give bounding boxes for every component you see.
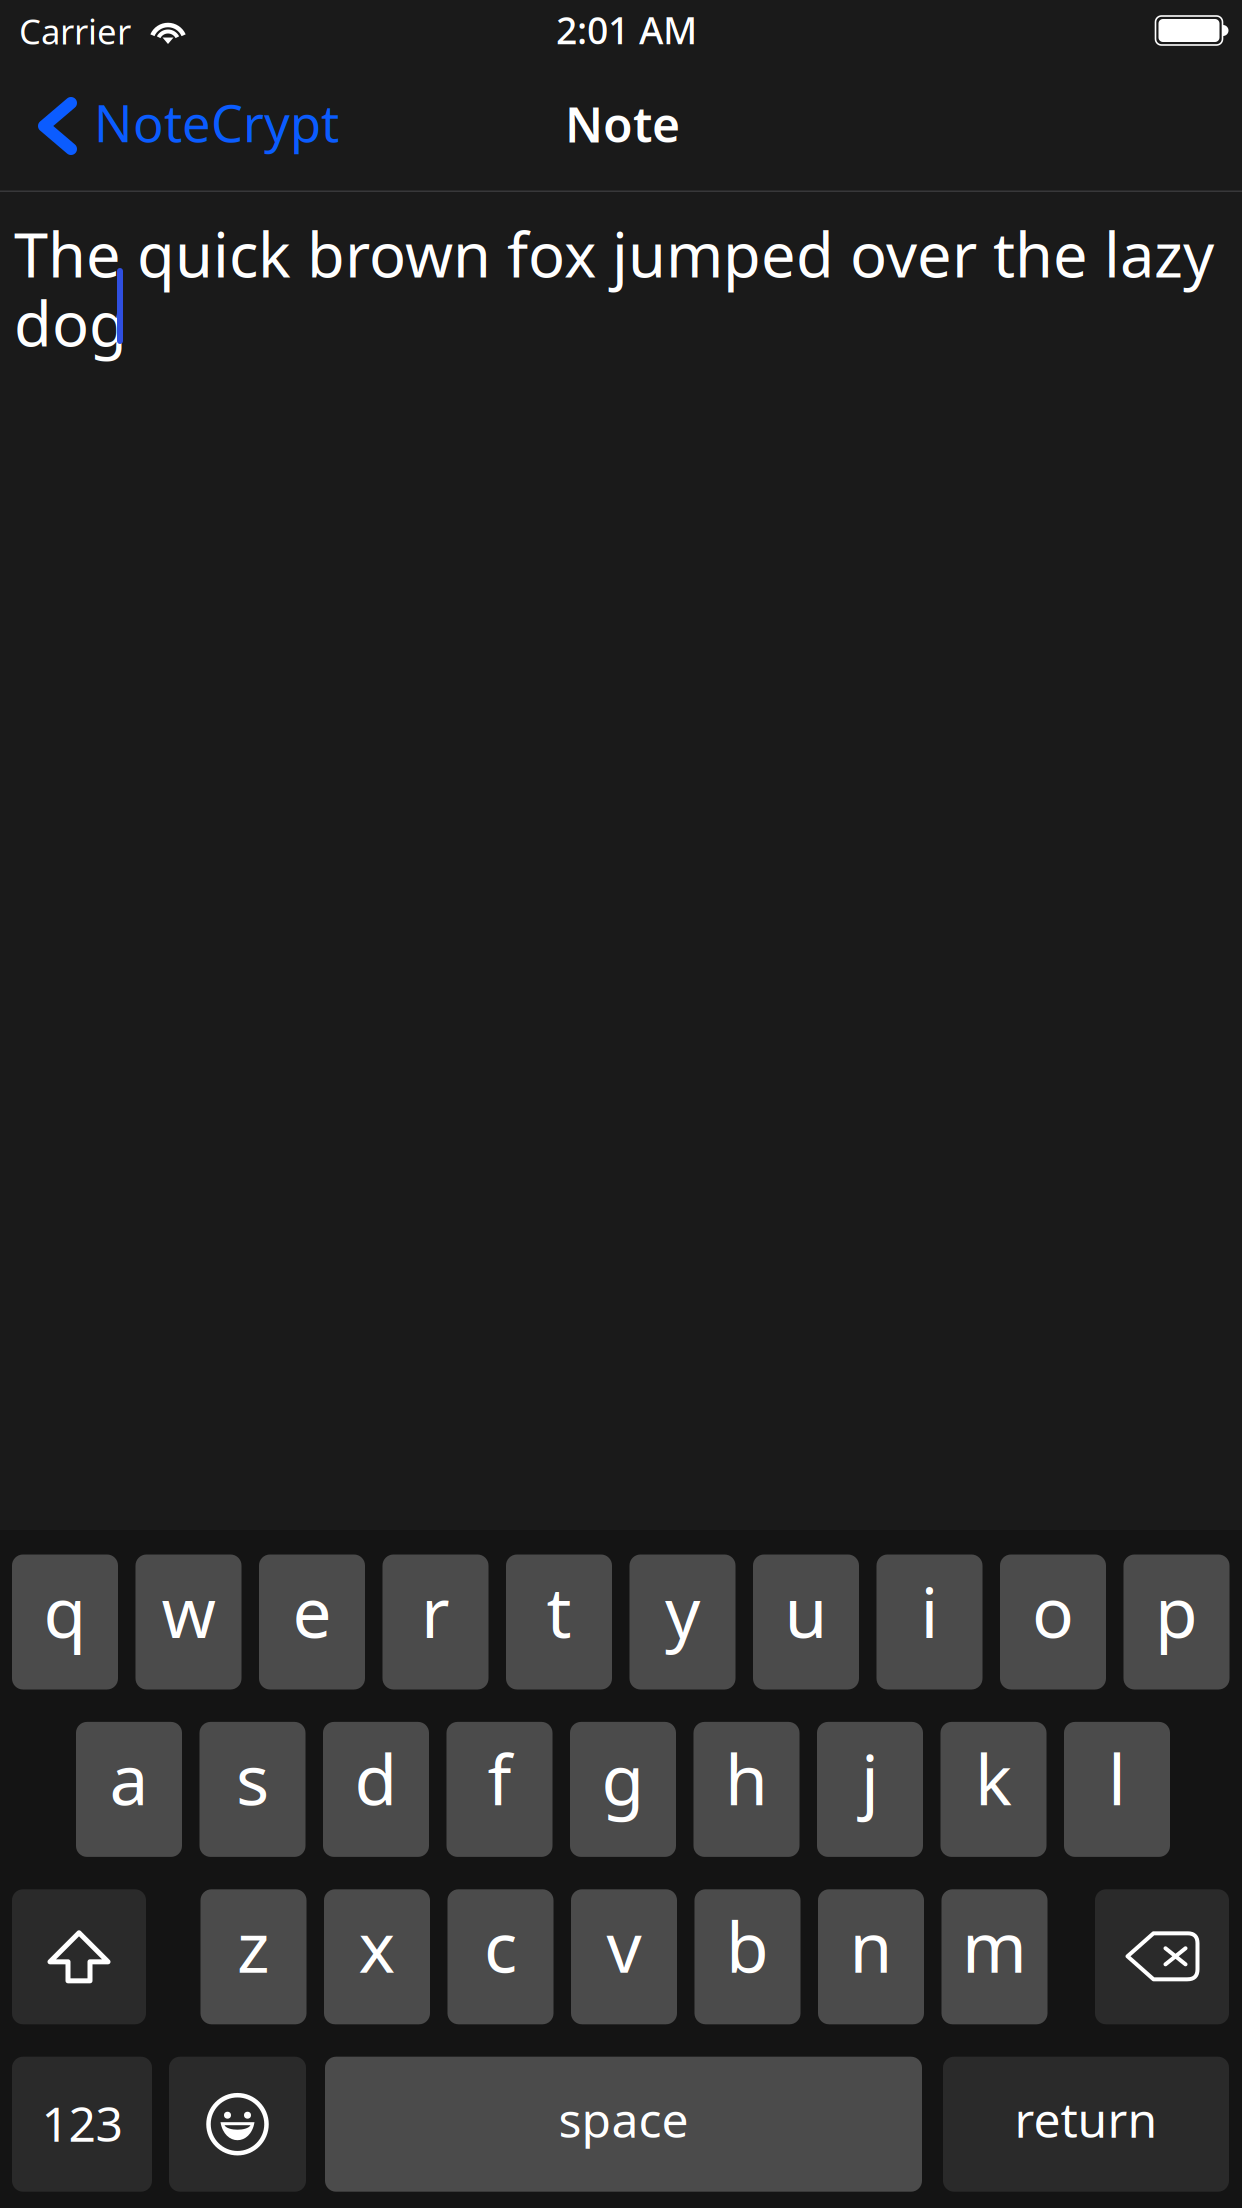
staticText: h [725, 1732, 768, 1824]
staticText: z [237, 1900, 270, 1992]
staticText: k [975, 1732, 1012, 1824]
staticText: p [1155, 1565, 1198, 1657]
staticText: v [606, 1900, 641, 1992]
button[interactable]: t [506, 1554, 612, 1689]
staticText: w [161, 1565, 215, 1657]
button[interactable]: m [941, 1889, 1047, 2024]
staticText: space [558, 2087, 688, 2151]
button[interactable]: d [323, 1722, 429, 1857]
staticText: dog [14, 282, 127, 363]
staticText: b [726, 1900, 769, 1992]
button[interactable]: v [571, 1889, 677, 2024]
button[interactable]: Delete [1095, 1889, 1229, 2024]
button[interactable]: n [818, 1889, 924, 2024]
staticText: return [1014, 2087, 1157, 2151]
button[interactable]: x [324, 1889, 430, 2024]
staticText: g [601, 1732, 644, 1824]
button[interactable]: w [135, 1554, 241, 1689]
staticText: x [358, 1900, 395, 1992]
button[interactable]: u [753, 1554, 859, 1689]
staticText: s [236, 1732, 269, 1824]
staticText: y [665, 1565, 700, 1657]
button[interactable]: space [325, 2057, 922, 2192]
button[interactable]: e [259, 1554, 365, 1689]
button[interactable]: a [76, 1722, 182, 1857]
button[interactable]: s [199, 1722, 305, 1857]
staticText: e [292, 1565, 331, 1657]
button[interactable]: q [12, 1554, 118, 1689]
staticText: r [421, 1565, 450, 1657]
staticText: n [849, 1900, 892, 1992]
button[interactable]: c [447, 1889, 553, 2024]
button[interactable]: 123 [12, 2057, 152, 2192]
button[interactable]: j [817, 1722, 923, 1857]
staticText: u [784, 1565, 827, 1657]
staticText: Carrier [19, 8, 131, 54]
button[interactable]: h [693, 1722, 799, 1857]
staticText: 123 [41, 2091, 122, 2155]
button[interactable]: Shift [12, 1889, 146, 2024]
button[interactable]: p [1123, 1554, 1229, 1689]
button[interactable]: o [1000, 1554, 1106, 1689]
staticText: NoteCrypt [94, 89, 339, 156]
button[interactable]: y [629, 1554, 735, 1689]
button[interactable]: r [382, 1554, 488, 1689]
button[interactable]: b [694, 1889, 800, 2024]
button[interactable]: l [1064, 1722, 1170, 1857]
staticText: f [487, 1732, 511, 1824]
staticText: m [962, 1900, 1027, 1992]
staticText: 2:01 AM [556, 5, 697, 55]
staticText: t [546, 1565, 571, 1657]
button[interactable]: g [570, 1722, 676, 1857]
staticText: a [109, 1732, 148, 1824]
button[interactable]: return [943, 2057, 1229, 2192]
button[interactable]: i [876, 1554, 982, 1689]
staticText: d [354, 1732, 397, 1824]
staticText: The quick brown fox jumped over the lazy [14, 213, 1214, 294]
staticText: q [43, 1565, 86, 1657]
staticText: i [920, 1565, 938, 1657]
staticText: o [1032, 1565, 1074, 1657]
staticText: Note [565, 92, 680, 156]
staticText: l [1108, 1732, 1126, 1824]
button[interactable]: Emoji keyboard [169, 2057, 306, 2192]
button[interactable]: NoteCrypt [28, 86, 338, 166]
button[interactable]: z [200, 1889, 306, 2024]
button[interactable]: f [446, 1722, 552, 1857]
staticText: c [484, 1900, 517, 1992]
button[interactable]: k [940, 1722, 1046, 1857]
staticText: j [861, 1732, 879, 1824]
